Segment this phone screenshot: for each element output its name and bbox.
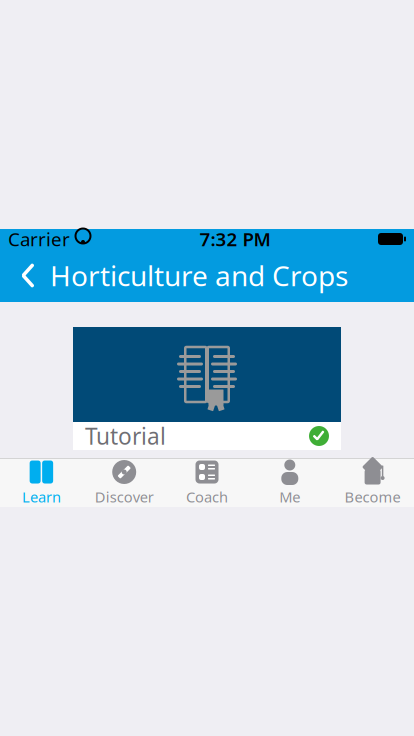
staticText: Discover — [95, 487, 154, 506]
button[interactable]: Tutorial — [73, 327, 341, 450]
staticText: 7:32 PM — [199, 227, 270, 251]
staticText: Carrier — [8, 227, 70, 251]
staticText: Learn — [22, 487, 61, 506]
button[interactable]: Coach — [166, 458, 248, 507]
button[interactable]: Become — [331, 458, 414, 507]
button[interactable]: Discover — [83, 458, 166, 507]
button[interactable]: Me — [248, 458, 331, 507]
staticText — [70, 228, 74, 250]
staticText: Me — [279, 487, 300, 506]
staticText: Tutorial — [85, 421, 166, 451]
staticText: Horticulture and Crops — [50, 257, 348, 294]
staticText: Coach — [186, 487, 228, 506]
button[interactable]: Learn — [0, 458, 83, 507]
button[interactable]: Back — [6, 253, 50, 297]
staticText: Become — [345, 487, 401, 506]
